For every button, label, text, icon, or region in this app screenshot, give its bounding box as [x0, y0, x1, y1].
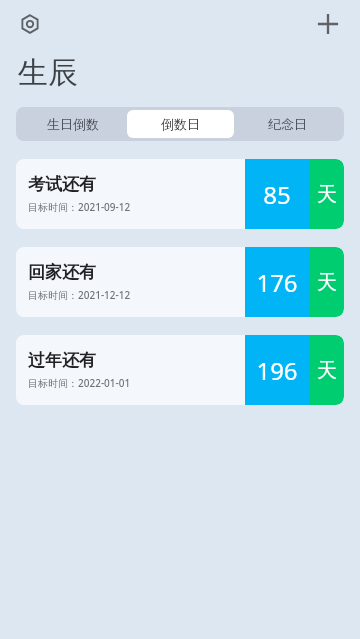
button[interactable]: 回家还有 [16, 247, 344, 317]
staticText: 目标时间：2021-09-12 [28, 200, 131, 214]
staticText: 176 [256, 266, 298, 299]
button[interactable]: Settings [10, 4, 50, 44]
staticText: 生辰 [18, 54, 78, 92]
staticText: 倒数日 [161, 116, 200, 132]
button[interactable]: Add [306, 2, 350, 46]
staticText: 考试还有 [28, 174, 96, 195]
staticText: 天 [317, 358, 337, 383]
button[interactable]: 倒数日 [127, 110, 234, 138]
staticText: 纪念日 [268, 116, 307, 132]
button[interactable]: 考试还有 [16, 159, 344, 229]
button[interactable]: 生日倒数 [19, 110, 127, 138]
staticText: 过年还有 [28, 350, 96, 371]
button[interactable]: 过年还有 [16, 335, 344, 405]
staticText: 目标时间：2021-12-12 [28, 288, 131, 302]
staticText: 196 [256, 354, 298, 387]
staticText: 回家还有 [28, 262, 96, 283]
button[interactable]: 纪念日 [234, 110, 341, 138]
staticText: 85 [263, 178, 291, 211]
staticText: 天 [317, 182, 337, 207]
staticText: 生日倒数 [47, 116, 99, 132]
staticText: 天 [317, 270, 337, 295]
staticText: 目标时间：2022-01-01 [28, 376, 131, 390]
